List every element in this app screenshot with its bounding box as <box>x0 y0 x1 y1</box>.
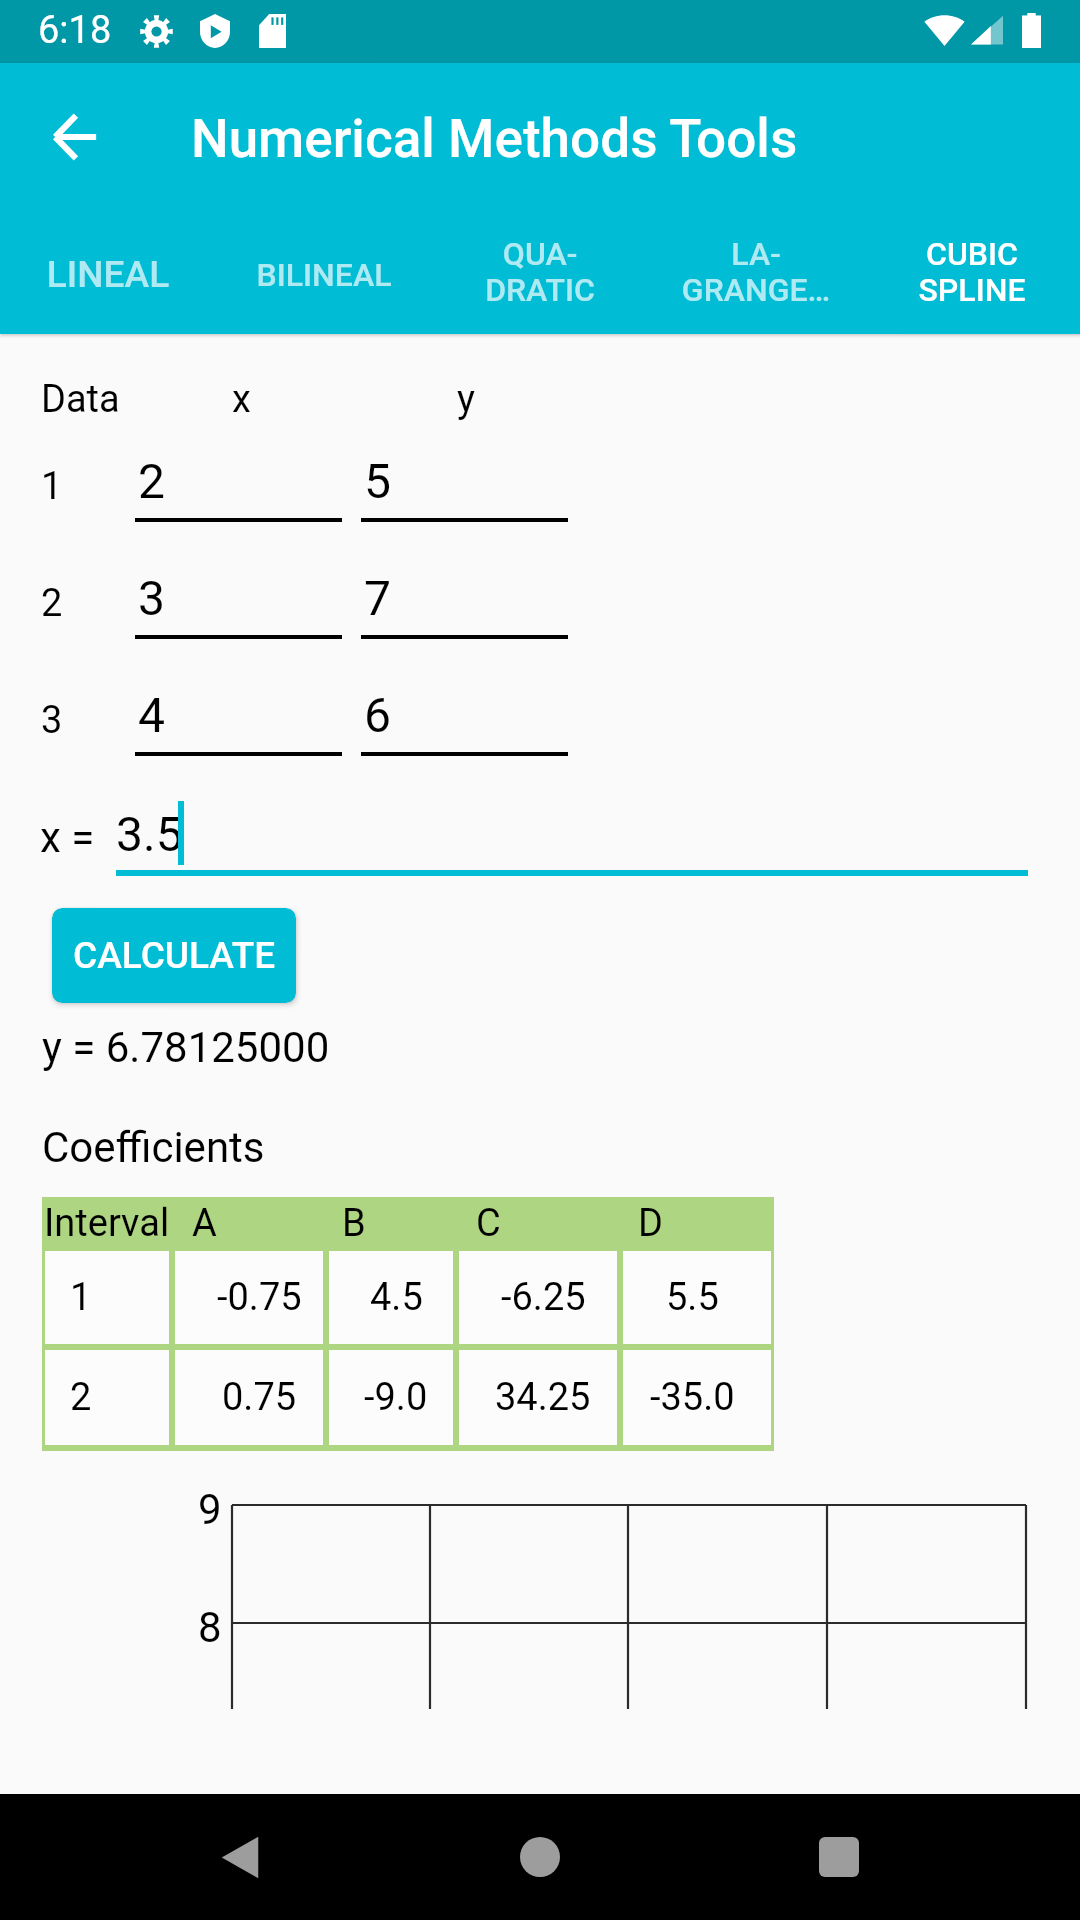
staticText: B <box>342 1201 366 1246</box>
staticText: QUA- DRATIC <box>432 235 648 309</box>
staticText: CUBIC SPLINE <box>864 235 1080 309</box>
button[interactable]: Recent apps <box>799 1817 879 1897</box>
staticText: y <box>457 377 475 422</box>
staticText: 2 <box>138 453 165 509</box>
staticText: 3.5 <box>116 806 183 862</box>
staticText: Interval <box>44 1201 170 1246</box>
staticText: 5.5 <box>666 1275 719 1320</box>
staticText: 34.25 <box>495 1375 591 1420</box>
staticText: LA- GRANGE… <box>648 235 864 309</box>
button[interactable]: QUA- DRATIC <box>432 215 648 334</box>
staticText: 5 <box>364 453 391 509</box>
staticText: A <box>192 1201 217 1246</box>
staticText: -6.25 <box>501 1275 586 1320</box>
button[interactable]: LA- GRANGE… <box>648 215 864 334</box>
staticText: 3 <box>138 570 165 626</box>
staticText: Data <box>41 377 120 422</box>
button[interactable]: Back <box>27 89 123 185</box>
staticText: CALCULATE <box>73 934 276 977</box>
staticText: 0.75 <box>222 1375 297 1420</box>
staticText: Numerical Methods Tools <box>191 108 798 170</box>
staticText: BILINEAL <box>216 256 432 294</box>
staticText: C <box>476 1201 501 1246</box>
staticText: 1 <box>70 1275 92 1320</box>
staticText: 9 <box>198 1485 222 1534</box>
staticText: -35.0 <box>650 1375 735 1420</box>
staticText: D <box>638 1201 663 1246</box>
staticText: Coefficients <box>42 1123 265 1172</box>
staticText: y = 6.78125000 <box>42 1023 330 1072</box>
staticText: x = <box>40 813 95 862</box>
button[interactable]: Back <box>200 1817 280 1897</box>
staticText: -9.0 <box>364 1375 428 1420</box>
button[interactable]: BILINEAL <box>216 215 432 334</box>
button[interactable]: LINEAL <box>0 215 216 334</box>
staticText: -0.75 <box>217 1275 302 1320</box>
button[interactable]: CALCULATE <box>52 908 296 1003</box>
staticText: 6:18 <box>38 8 112 53</box>
staticText: 1 <box>41 464 63 509</box>
button[interactable]: CUBIC SPLINE <box>864 215 1080 334</box>
staticText: 2 <box>41 581 63 626</box>
staticText: 4 <box>138 687 165 743</box>
staticText: 4.5 <box>370 1275 423 1320</box>
staticText: 3 <box>41 698 63 743</box>
staticText: 7 <box>364 570 391 626</box>
staticText: x <box>232 377 251 422</box>
staticText: 8 <box>198 1603 222 1652</box>
staticText: 6 <box>364 687 391 743</box>
staticText: LINEAL <box>0 253 216 296</box>
staticText: 2 <box>70 1375 92 1420</box>
button[interactable]: Home <box>500 1817 580 1897</box>
